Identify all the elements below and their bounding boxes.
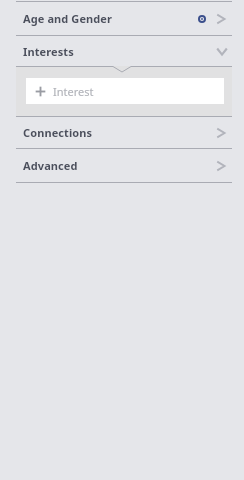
- button[interactable]: Interest: [26, 78, 224, 104]
- staticText: Advanced: [23, 158, 78, 173]
- button[interactable]: Age and Gender: [0, 2, 244, 35]
- staticText: Interest: [53, 84, 94, 99]
- staticText: Age and Gender: [23, 11, 113, 26]
- button[interactable]: Advanced: [0, 149, 244, 182]
- staticText: Interests: [23, 44, 74, 59]
- staticText: Connections: [23, 125, 93, 140]
- button[interactable]: Connections: [0, 117, 244, 148]
- button[interactable]: Interests: [0, 36, 244, 66]
- other: Info: [198, 15, 206, 23]
